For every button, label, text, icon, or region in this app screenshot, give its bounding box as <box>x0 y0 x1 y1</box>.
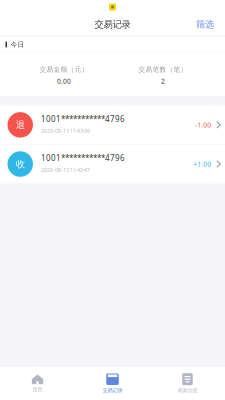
staticText: 交易金额（元） <box>39 65 88 74</box>
staticText: 今日 <box>10 40 24 49</box>
button[interactable]: 退 <box>0 105 225 144</box>
staticText: 首页 <box>32 386 42 393</box>
staticText: 收 <box>16 158 25 170</box>
staticText: 交易记录 <box>102 387 122 394</box>
button[interactable]: 筛选 <box>196 15 225 34</box>
staticText: 0.00 <box>57 77 71 85</box>
staticText: 商家信息 <box>177 387 197 394</box>
staticText: 2 <box>161 77 165 85</box>
staticText: 1001***********4796 <box>41 153 125 163</box>
staticText: 2020-08-13 11:43:06 <box>41 127 90 134</box>
staticText: +1.00 <box>193 160 211 168</box>
staticText: -1.00 <box>195 120 211 129</box>
button[interactable]: 首页 <box>0 367 75 400</box>
button[interactable]: 交易记录 <box>75 367 150 400</box>
button[interactable]: 商家信息 <box>150 367 225 400</box>
staticText: 2020-08-13 11:42:47 <box>41 166 90 173</box>
staticText: 退 <box>16 119 25 131</box>
staticText: 1001***********4796 <box>41 113 125 124</box>
button[interactable]: 收 <box>0 145 225 183</box>
staticText: 交易笔数（笔） <box>138 65 187 74</box>
staticText: 交易记录 <box>94 19 130 30</box>
staticText: 筛选 <box>196 19 214 30</box>
